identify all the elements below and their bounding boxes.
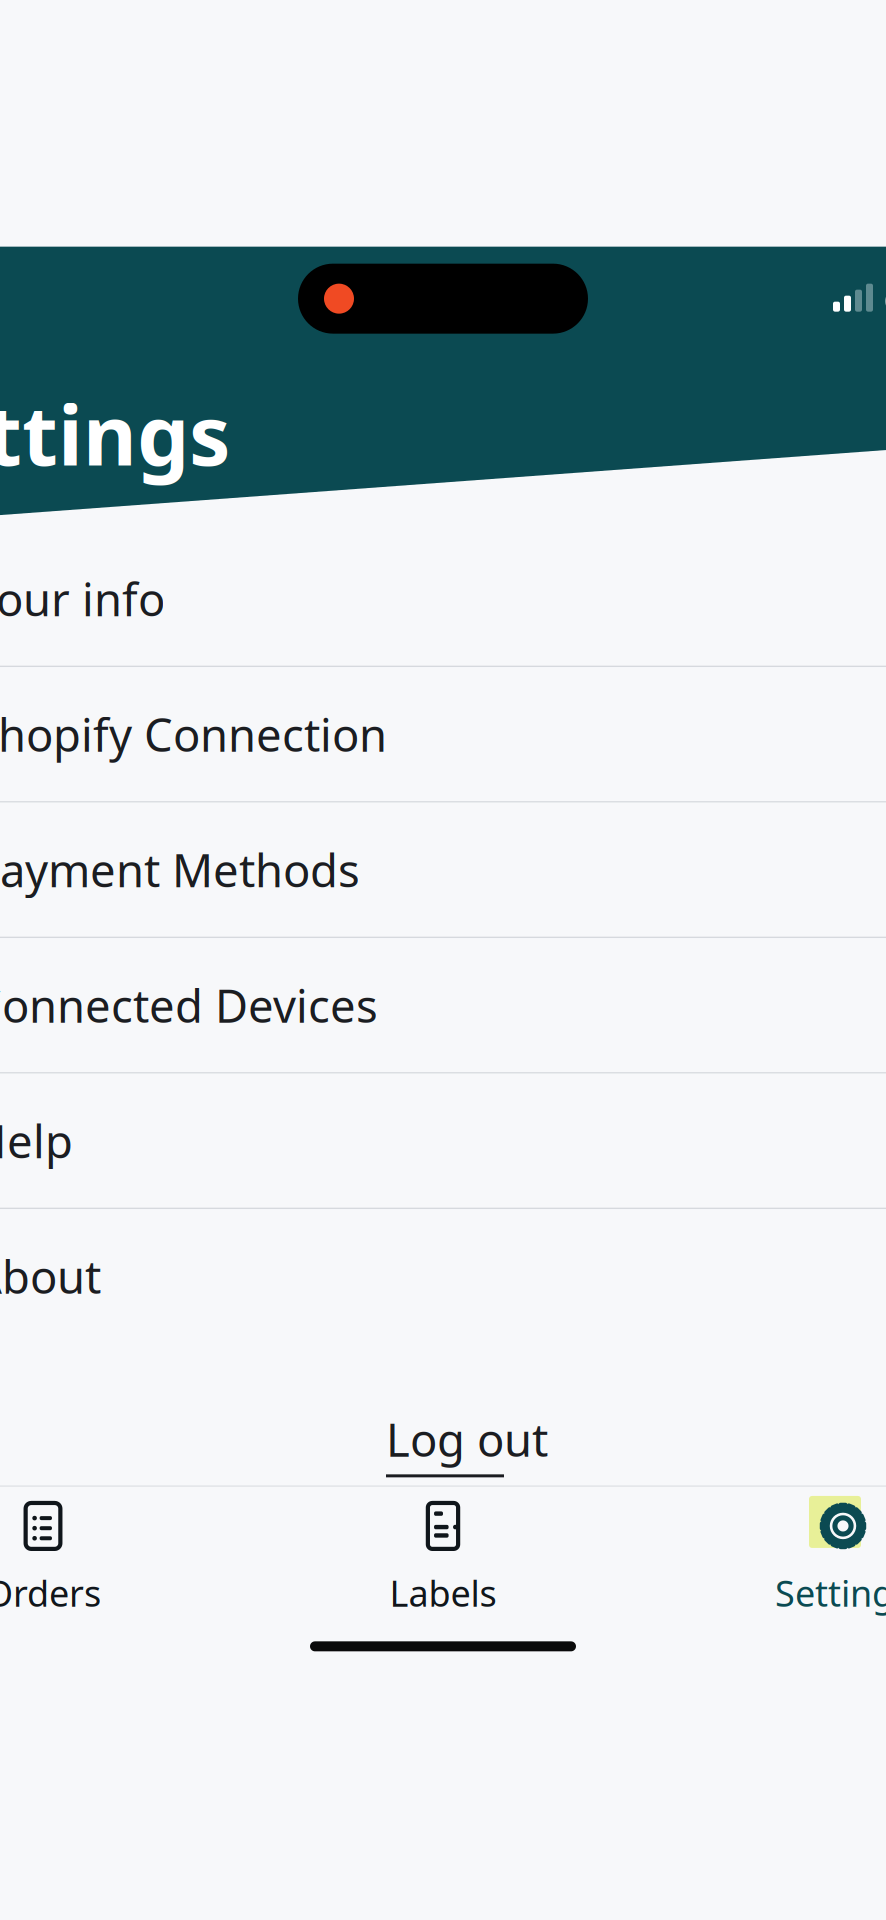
staticText: Settings [775,1569,886,1617]
staticText: Settings [0,379,230,488]
button[interactable]: Shopify Connection [0,667,886,801]
staticText: Labels [389,1569,496,1617]
button[interactable]: Labels [243,1477,643,1627]
button[interactable]: Your info [0,532,886,666]
staticText: Help [0,1110,73,1171]
staticText: Connected Devices [0,975,378,1035]
staticText: Log out [386,1409,548,1469]
button[interactable]: About [0,1209,886,1343]
staticText: Shopify Connection [0,704,387,764]
staticText: About [0,1246,101,1306]
button[interactable]: Connected Devices [0,938,886,1072]
staticText: Orders [0,1569,101,1617]
button[interactable]: Orders [0,1477,243,1627]
button[interactable]: Help [0,1074,886,1208]
button[interactable]: Payment Methods [0,803,886,937]
staticText: Your info [0,568,165,629]
staticText: Payment Methods [0,839,360,900]
button[interactable]: Log out [338,1343,548,1477]
button[interactable]: Settings [643,1477,886,1627]
